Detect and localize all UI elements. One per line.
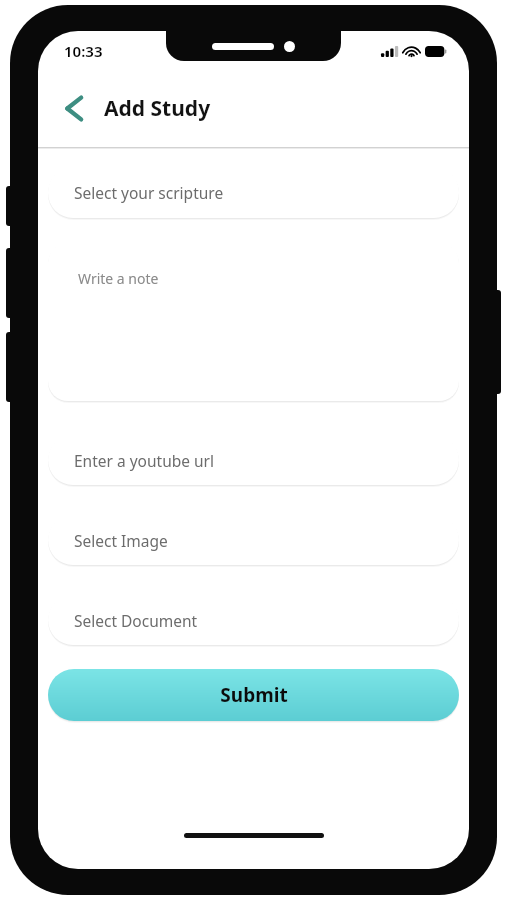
staticText: 10:33 [64,41,103,61]
button[interactable]: Select Image [48,515,459,565]
staticText: Enter a youtube url [74,450,215,471]
staticText: Add Study [104,94,211,123]
staticText: Select Document [74,610,198,631]
button[interactable]: Select your scripture [48,167,459,218]
staticText: Write a note [78,269,159,288]
button[interactable]: Submit [48,669,459,721]
staticText: Select Image [74,530,168,551]
button[interactable]: Write a note [48,243,459,401]
button[interactable]: Back [52,86,96,130]
staticText: Select your scripture [74,182,224,203]
staticText: Submit [220,682,288,708]
button[interactable]: Select Document [48,595,459,645]
button[interactable]: Enter a youtube url [48,435,459,485]
